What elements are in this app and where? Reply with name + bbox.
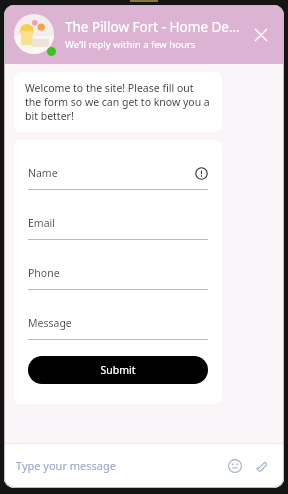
staticText: Message [28,316,208,330]
staticText: Welcome to the site! Please fill out the… [25,81,211,123]
button[interactable]: Type your message [16,458,224,473]
other: Required field error [195,167,208,180]
staticText: Submit [100,363,136,377]
staticText: Name [28,166,195,180]
staticText: Phone [28,266,208,280]
button[interactable]: Message [28,316,208,340]
button[interactable]: Submit [28,356,208,384]
button[interactable]: Close chat [248,22,274,48]
button[interactable]: Insert emoji [224,455,246,477]
button[interactable]: Email [28,216,208,240]
staticText: Type your message [16,458,116,473]
staticText: We'll reply within a few hours [65,38,196,51]
button[interactable]: Phone [28,266,208,290]
button[interactable]: Attach file [250,455,272,477]
staticText: Email [28,216,208,230]
button[interactable]: Name [28,166,208,190]
staticText: The Pillow Fort - Home De… [65,18,240,36]
